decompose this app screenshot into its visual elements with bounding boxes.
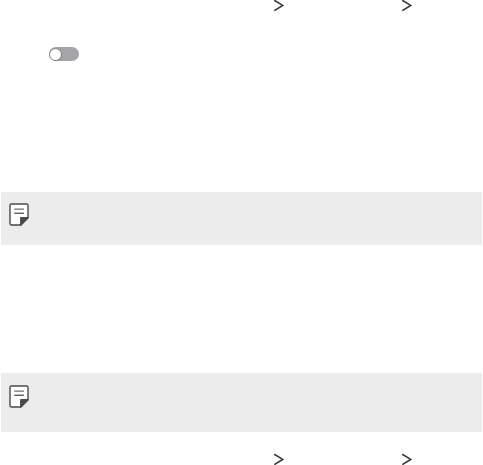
button[interactable]: Toggle setting (49, 47, 79, 61)
button[interactable]: Open (401, 0, 411, 11)
button[interactable]: Open (273, 0, 283, 11)
button[interactable]: Open (401, 453, 411, 465)
button[interactable]: Note item (1, 373, 482, 432)
button[interactable]: Note item (1, 192, 482, 245)
button[interactable]: Open (273, 453, 283, 465)
